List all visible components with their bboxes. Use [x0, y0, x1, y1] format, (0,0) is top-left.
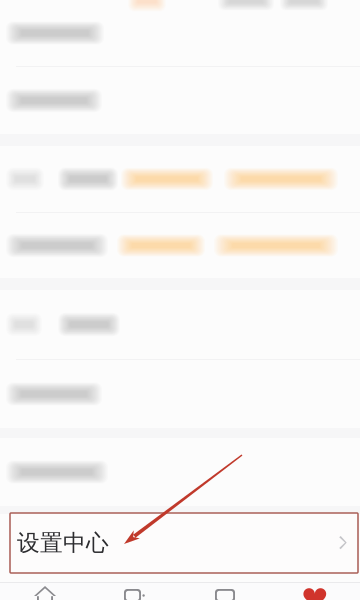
button[interactable]	[0, 67, 360, 134]
button[interactable]	[0, 0, 360, 66]
button[interactable]	[0, 213, 360, 278]
button[interactable]	[0, 146, 360, 212]
button[interactable]: Messages	[90, 583, 180, 600]
button[interactable]: Mine	[270, 583, 360, 600]
button[interactable]	[0, 438, 360, 506]
button[interactable]: Home	[0, 583, 90, 600]
button[interactable]	[0, 290, 360, 359]
button[interactable]: 设置中心	[10, 513, 358, 573]
button[interactable]	[0, 360, 360, 428]
staticText: 设置中心	[17, 529, 109, 557]
button[interactable]: Orders	[180, 583, 270, 600]
